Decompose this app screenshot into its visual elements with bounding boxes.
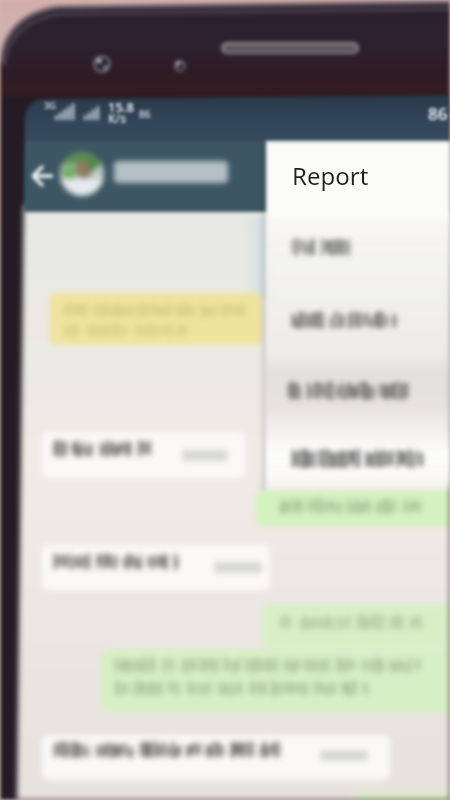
staticText: 3G — [44, 99, 56, 111]
staticText: Report — [292, 159, 369, 192]
staticText: 15.8 — [108, 98, 134, 116]
staticText: K/s — [108, 110, 127, 126]
staticText: 86 — [139, 107, 151, 121]
staticText: 86 — [428, 102, 448, 125]
button[interactable]: Report — [266, 141, 450, 217]
